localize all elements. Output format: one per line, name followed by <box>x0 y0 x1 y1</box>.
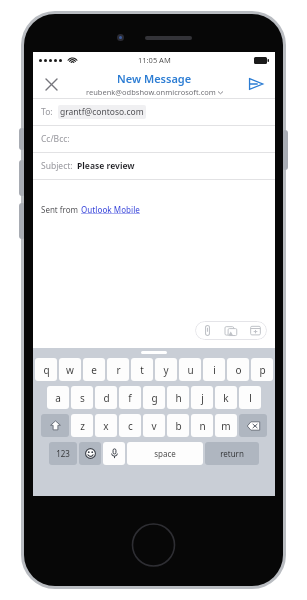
button[interactable]: 123 <box>49 442 77 465</box>
staticText: s <box>80 391 85 405</box>
staticText: space <box>154 448 176 459</box>
staticText: p <box>259 363 266 377</box>
button[interactable]: Close <box>40 73 62 95</box>
button[interactable]: Backspace <box>239 414 267 437</box>
button[interactable]: i <box>203 358 225 381</box>
staticText: w <box>66 363 74 377</box>
staticText: Sent from <box>41 204 81 215</box>
button[interactable]: n <box>191 414 213 437</box>
staticText: n <box>199 419 206 433</box>
button[interactable]: return <box>205 442 259 465</box>
staticText: 11:05 AM <box>138 55 171 65</box>
button[interactable]: Shift <box>41 414 69 437</box>
staticText: t <box>140 363 144 377</box>
button[interactable]: Cc/Bcc: <box>33 126 275 152</box>
staticText: Subject: <box>41 160 73 172</box>
button[interactable]: Voice input <box>103 442 125 465</box>
button[interactable]: Outlook Mobile <box>81 204 140 215</box>
button[interactable]: space <box>127 442 203 465</box>
button[interactable]: x <box>95 414 117 437</box>
staticText: return <box>220 448 244 459</box>
button[interactable]: d <box>95 386 117 409</box>
staticText: y <box>163 363 169 377</box>
button[interactable]: p <box>251 358 273 381</box>
staticText: l <box>249 391 252 405</box>
staticText: d <box>103 391 110 405</box>
staticText: g <box>151 391 158 405</box>
staticText: To: <box>41 106 53 118</box>
staticText: x <box>103 419 109 433</box>
button[interactable]: m <box>215 414 237 437</box>
staticText: z <box>80 419 85 433</box>
button[interactable]: a <box>47 386 69 409</box>
staticText: v <box>151 419 157 433</box>
button[interactable]: z <box>71 414 93 437</box>
button[interactable]: j <box>191 386 213 409</box>
button[interactable]: u <box>179 358 201 381</box>
button[interactable]: Attach file <box>195 321 219 340</box>
staticText: b <box>175 419 182 433</box>
staticText: 123 <box>56 448 70 459</box>
button[interactable]: b <box>167 414 189 437</box>
staticText: i <box>213 363 216 377</box>
button[interactable]: Add <box>243 321 267 340</box>
staticText: grantf@contoso.com <box>60 106 144 118</box>
button[interactable]: Emoji <box>79 442 101 465</box>
button[interactable]: s <box>71 386 93 409</box>
button[interactable]: k <box>215 386 237 409</box>
button[interactable]: v <box>143 414 165 437</box>
button[interactable]: y <box>155 358 177 381</box>
staticText: c <box>128 419 133 433</box>
button[interactable]: e <box>83 358 105 381</box>
button[interactable]: To: <box>33 99 275 125</box>
staticText: r <box>116 363 121 377</box>
button[interactable]: q <box>35 358 57 381</box>
button[interactable]: o <box>227 358 249 381</box>
button[interactable]: f <box>119 386 141 409</box>
staticText: f <box>128 391 132 405</box>
staticText: reubenk@odbshow.onmicrosoft.com <box>86 87 216 97</box>
button[interactable]: Insert photo <box>219 321 243 340</box>
staticText: j <box>201 391 204 405</box>
staticText: a <box>55 391 61 405</box>
button[interactable]: r <box>107 358 129 381</box>
button[interactable]: w <box>59 358 81 381</box>
staticText: u <box>187 363 194 377</box>
button[interactable]: Subject: <box>33 153 275 179</box>
button[interactable]: t <box>131 358 153 381</box>
button[interactable]: g <box>143 386 165 409</box>
staticText: o <box>235 363 242 377</box>
button[interactable]: l <box>239 386 261 409</box>
staticText: m <box>221 419 231 433</box>
staticText: Cc/Bcc: <box>41 133 70 145</box>
staticText: k <box>223 391 229 405</box>
staticText: New Message <box>117 71 192 86</box>
staticText: e <box>91 363 97 377</box>
staticText: q <box>43 363 50 377</box>
button[interactable]: c <box>119 414 141 437</box>
staticText: h <box>175 391 182 405</box>
staticText: Please review <box>77 160 135 172</box>
button[interactable]: h <box>167 386 189 409</box>
button[interactable]: Send <box>244 72 268 96</box>
